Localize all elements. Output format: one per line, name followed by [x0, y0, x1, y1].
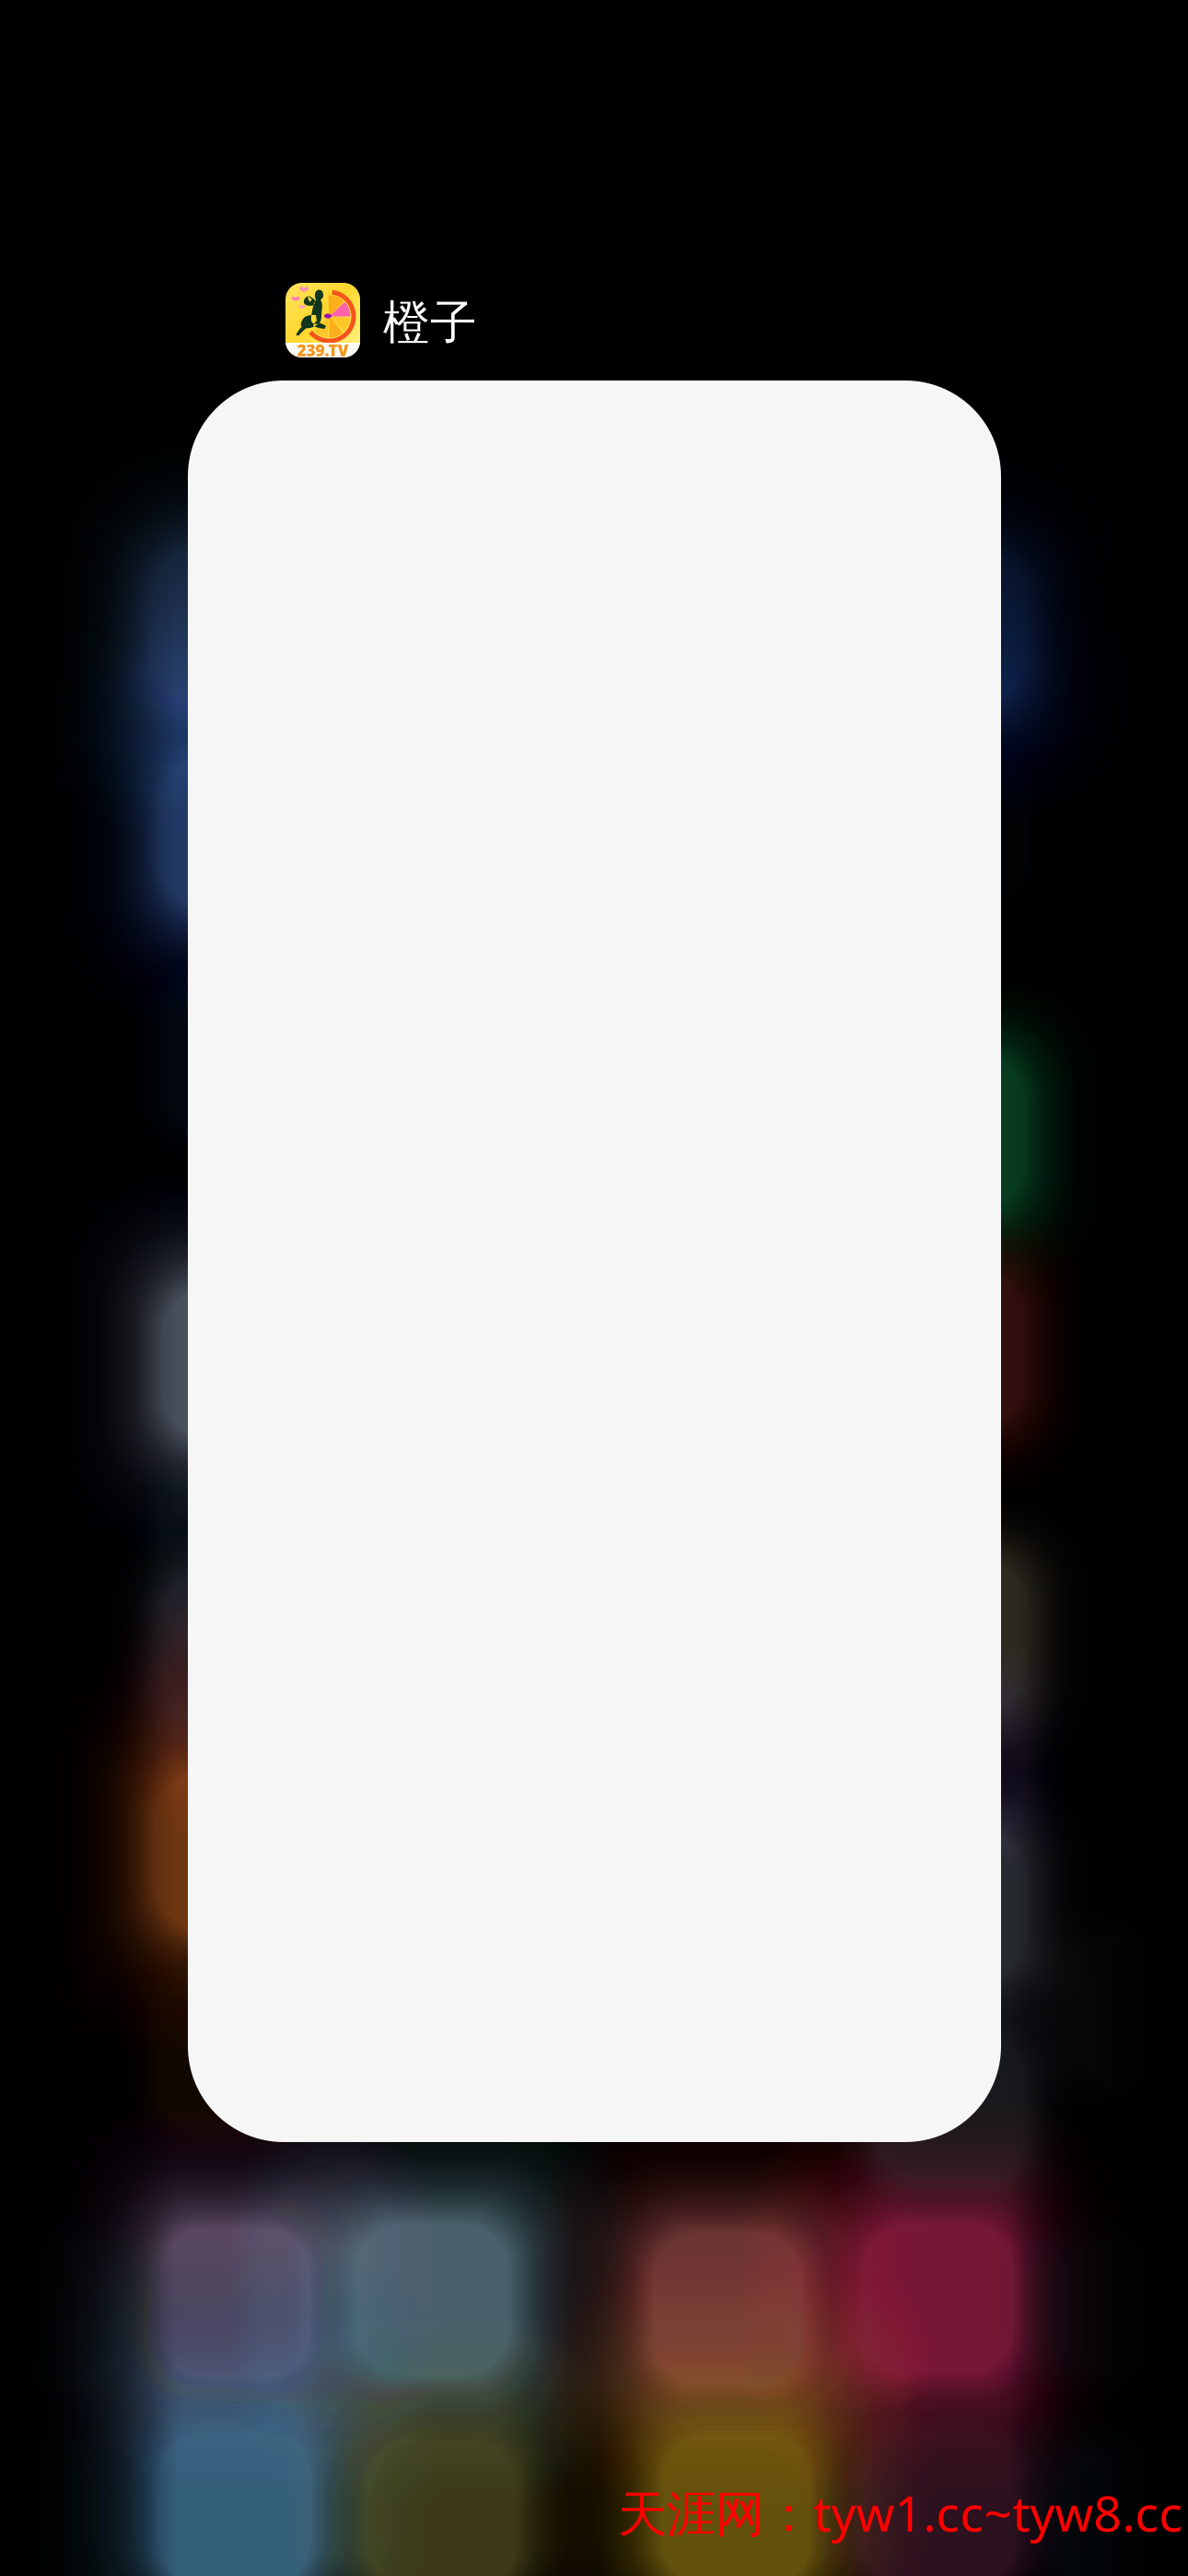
button[interactable]: 橙子: [285, 283, 360, 357]
staticText: 239.TV: [297, 340, 349, 361]
staticText: 橙子: [383, 294, 477, 352]
button[interactable]: [188, 381, 1001, 2142]
staticText: 天涯网：tyw1.cc~tyw8.cc: [618, 2480, 1182, 2545]
